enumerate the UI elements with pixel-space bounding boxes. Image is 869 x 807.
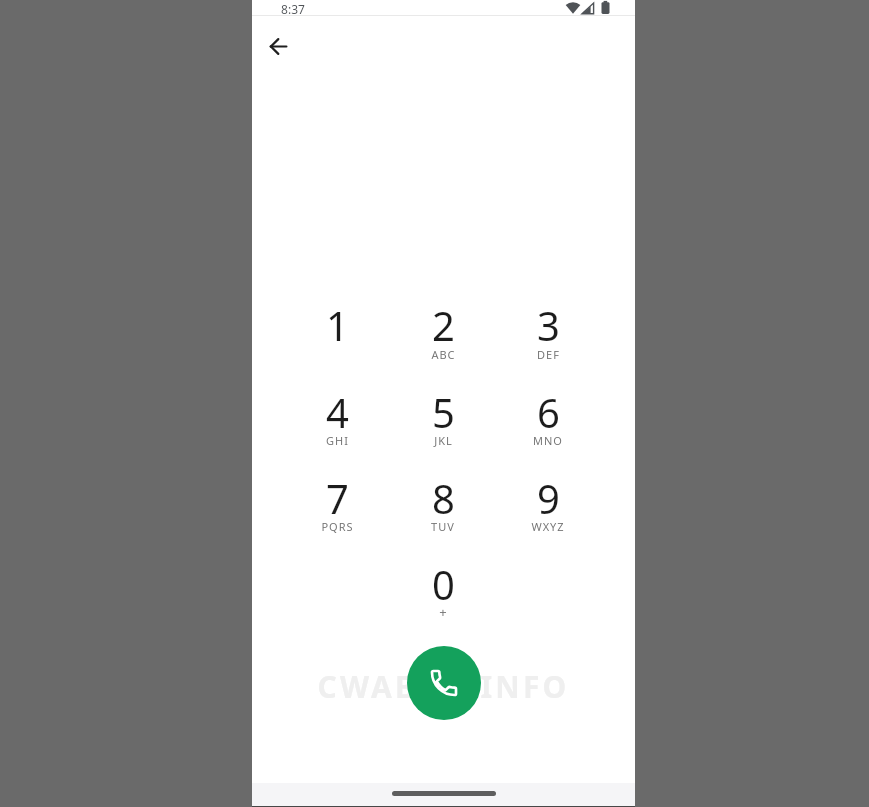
staticText: MNO xyxy=(533,433,563,448)
staticText: 8:37 xyxy=(281,1,305,15)
staticText: PQRS xyxy=(321,519,354,534)
staticText: DEF xyxy=(537,347,560,362)
staticText: + xyxy=(439,603,447,621)
staticText: CWABETAINFO xyxy=(317,666,570,702)
staticText: JKL xyxy=(434,433,453,448)
staticText: 0 xyxy=(432,557,455,611)
staticText: 2 xyxy=(432,298,455,352)
staticText: 5 xyxy=(432,385,455,439)
staticText: 9 xyxy=(537,471,560,525)
staticText: ABC xyxy=(431,347,456,362)
staticText: GHI xyxy=(326,433,349,448)
staticText: WXYZ xyxy=(531,519,565,534)
staticText: 7 xyxy=(326,471,349,525)
staticText: 3 xyxy=(537,298,560,352)
staticText: 8 xyxy=(432,471,455,525)
staticText: 4 xyxy=(326,385,349,439)
staticText: TUV xyxy=(431,519,455,534)
staticText: 1 xyxy=(326,298,349,352)
staticText: 6 xyxy=(537,385,560,439)
